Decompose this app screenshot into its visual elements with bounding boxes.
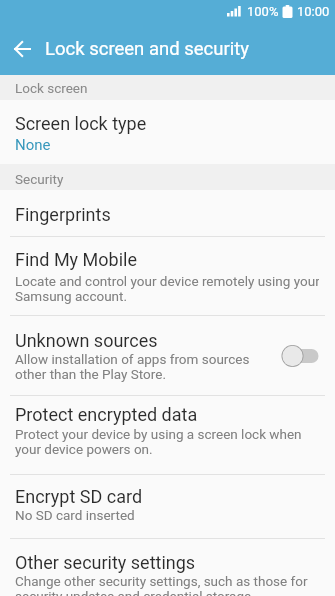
staticText: Lock screen and security bbox=[45, 38, 250, 60]
staticText: Allow installation of apps from sources … bbox=[15, 351, 250, 382]
staticText: Find My Mobile bbox=[15, 249, 137, 270]
staticText: Protect encrypted data bbox=[15, 404, 198, 425]
staticText: None bbox=[15, 136, 51, 154]
staticText: Locate and control your device remotely … bbox=[15, 273, 319, 304]
staticText: Other security settings bbox=[15, 552, 196, 573]
staticText: Change other security settings, such as … bbox=[15, 573, 308, 596]
staticText: Encrypt SD card bbox=[15, 486, 143, 507]
staticText: Screen lock type bbox=[15, 113, 147, 134]
button[interactable]: Fingerprints bbox=[0, 190, 335, 236]
staticText: No SD card inserted bbox=[15, 507, 135, 523]
button[interactable] bbox=[0, 22, 45, 75]
button[interactable]: Protect encrypted data bbox=[0, 396, 335, 474]
staticText: Fingerprints bbox=[15, 204, 111, 225]
staticText: Unknown sources bbox=[15, 330, 158, 351]
button[interactable]: Screen lock type bbox=[0, 100, 335, 164]
button[interactable]: Other security settings bbox=[0, 539, 335, 596]
button[interactable]: Unknown sources bbox=[0, 316, 335, 395]
button[interactable]: Encrypt SD card bbox=[0, 475, 335, 538]
button[interactable]: Find My Mobile bbox=[0, 237, 335, 315]
staticText: 10:00 bbox=[297, 4, 330, 19]
staticText: Security bbox=[15, 171, 64, 187]
staticText: Lock screen bbox=[15, 80, 88, 96]
staticText: Protect your device by using a screen lo… bbox=[15, 426, 302, 457]
staticText: 100% bbox=[247, 4, 279, 19]
